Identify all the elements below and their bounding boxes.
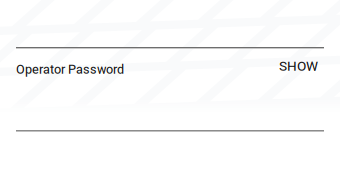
staticText: Operator Password: [16, 62, 124, 77]
staticText: SHOW: [279, 58, 318, 74]
button[interactable]: SHOW: [279, 58, 318, 74]
